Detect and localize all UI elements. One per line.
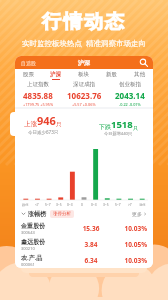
button[interactable]: Search: [139, 58, 148, 67]
staticText: 3~5: [56, 203, 62, 207]
button[interactable]: 上涨: [10, 112, 76, 136]
staticText: -0.22 -0.01%: [119, 102, 141, 107]
staticText: 鑫远股份: [21, 238, 45, 246]
staticText: 300210: [21, 246, 35, 251]
staticText: +1799.75 +5.95%: [23, 102, 54, 107]
staticText: 深证成指: [73, 81, 95, 88]
staticText: 今日新增440只: [104, 131, 133, 137]
staticText: 000061: [21, 262, 35, 267]
staticText: 6.34: [74, 256, 108, 265]
staticText: 金重股份: [21, 222, 45, 230]
staticText: 股票: [23, 71, 34, 78]
button[interactable]: 鑫远股份: [15, 236, 153, 252]
staticText: 10.05%: [108, 240, 147, 249]
staticText: 新股: [106, 71, 117, 78]
staticText: >7: [128, 203, 132, 207]
staticText: 0: [81, 203, 83, 207]
staticText: 2043.14: [115, 90, 145, 101]
button[interactable]: 新股: [97, 69, 125, 81]
staticText: 0~3: [67, 203, 73, 207]
button[interactable]: 沪深: [42, 69, 69, 81]
staticText: 沪深: [78, 59, 90, 67]
staticText: 今日减少673只: [28, 129, 59, 135]
staticText: 1518: [111, 118, 133, 131]
staticText: 涨停: [139, 203, 146, 207]
staticText: 行情动态: [0, 10, 168, 34]
staticText: 10.03%: [108, 224, 147, 233]
staticText: 板块: [78, 71, 89, 78]
staticText: 上涨: [24, 120, 37, 128]
staticText: 15.36: [74, 224, 108, 233]
staticText: 其他: [134, 71, 145, 78]
button[interactable]: 上证指数: [15, 81, 61, 107]
staticText: 涨幅榜: [28, 210, 46, 218]
staticText: 5~7: [115, 203, 121, 207]
staticText: 实时监控板块热点 精准洞察市场走向: [0, 38, 168, 48]
staticText: 3~5: [103, 203, 109, 207]
button[interactable]: 深证成指: [61, 81, 107, 107]
staticText: 只: [133, 125, 138, 131]
staticText: 10.03%: [108, 256, 147, 265]
button[interactable]: 涨停分析: [50, 210, 74, 218]
staticText: 农.产.品: [21, 254, 43, 262]
button[interactable]: 农.产.品: [15, 252, 153, 268]
button[interactable]: 股票: [15, 69, 42, 81]
button[interactable]: 创业板指: [107, 81, 153, 107]
staticText: 946: [37, 113, 56, 128]
staticText: <7: [35, 203, 39, 207]
staticText: 上证指数: [27, 81, 49, 88]
staticText: 涨停分析: [53, 211, 71, 217]
staticText: 更多: [132, 211, 142, 217]
staticText: 沪深: [50, 71, 61, 78]
staticText: 创业板指: [119, 81, 141, 88]
staticText: 0~3: [91, 203, 97, 207]
button[interactable]: 板块: [69, 69, 97, 81]
staticText: 4835.88: [23, 90, 53, 101]
button[interactable]: 其他: [125, 69, 153, 81]
staticText: +5.57 +0.06%: [72, 102, 96, 107]
button[interactable]: 涨幅榜: [15, 207, 153, 220]
staticText: 300643: [21, 230, 35, 235]
staticText: 自选股: [21, 60, 36, 66]
button[interactable]: 金重股份: [15, 220, 153, 236]
staticText: 跌停: [22, 203, 29, 207]
staticText: 只: [56, 121, 62, 128]
staticText: 下跌: [99, 123, 111, 131]
staticText: 5~7: [45, 203, 51, 207]
staticText: 10623.76: [67, 90, 102, 101]
staticText: 3.84: [74, 240, 108, 249]
